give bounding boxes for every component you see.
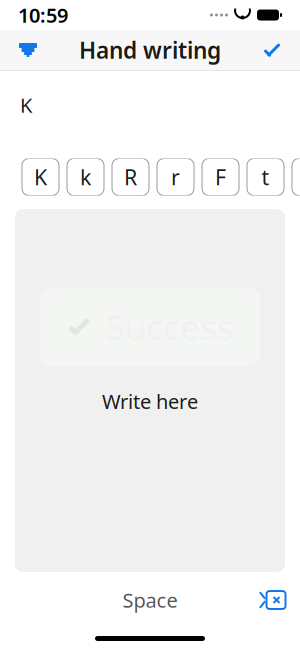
button[interactable]: T [292,158,300,195]
staticText: Hand writing [79,35,221,65]
button[interactable]: R [112,158,149,195]
staticText: Write here [102,388,198,414]
button[interactable]: Done [250,28,294,72]
staticText: 10:59 [18,2,68,28]
staticText: F [215,163,226,191]
button[interactable]: t [247,158,284,195]
button[interactable]: k [67,158,104,195]
staticText: t [261,163,269,191]
staticText: K [34,163,47,191]
button[interactable]: F [202,158,239,195]
staticText: Space [122,587,177,613]
button[interactable]: Dismiss keyboard [6,28,50,72]
button[interactable]: r [157,158,194,195]
button[interactable]: Delete [250,581,294,619]
staticText: K [20,92,32,118]
button[interactable]: K [22,158,59,195]
staticText: k [80,163,91,191]
staticText: r [171,163,180,191]
button[interactable]: Space [90,583,210,617]
staticText: R [124,163,137,191]
